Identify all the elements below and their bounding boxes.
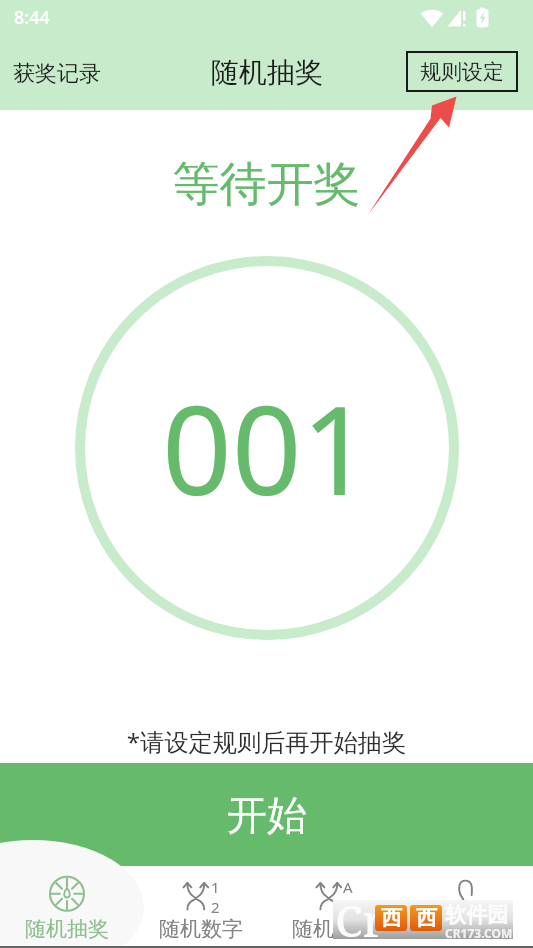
staticText: 随机抽奖 [25, 916, 109, 942]
staticText: 规则设定 [420, 59, 504, 85]
other: Wi-Fi [420, 7, 444, 28]
staticText: 西 [416, 905, 437, 931]
staticText: A [343, 877, 353, 897]
staticText: 随机抽奖 [211, 55, 323, 90]
staticText: 2 [211, 897, 220, 915]
staticText: 随机字母 [292, 916, 376, 942]
other: Battery charging [476, 7, 489, 28]
button[interactable]: A [267, 866, 400, 948]
staticText: 1 [211, 877, 220, 897]
staticText: B [343, 897, 353, 915]
button[interactable]: 1 [134, 866, 267, 948]
button[interactable]: 随机抽奖 [0, 866, 134, 948]
staticText: 开始 [227, 790, 307, 840]
button[interactable]: 随机焦点 [400, 866, 533, 948]
button[interactable]: 规则设定 [406, 51, 518, 92]
staticText: Cr [335, 890, 385, 947]
button[interactable]: 获奖记录 [0, 52, 109, 96]
staticText: 软件园 [445, 902, 508, 928]
staticText: 等待开奖 [0, 155, 533, 214]
staticText: 获奖记录 [13, 60, 101, 88]
button[interactable]: 开始 [0, 763, 533, 866]
staticText: CR173.COM [445, 925, 513, 941]
other: Mobile signal [447, 7, 467, 28]
staticText: 001 [162, 365, 372, 531]
staticText: 随机数字 [159, 916, 243, 942]
staticText: 西 [381, 905, 402, 931]
staticText: *请设定规则后再开始抽奖 [0, 725, 533, 758]
staticText: 随机焦点 [425, 916, 509, 942]
staticText: 8:44 [14, 5, 50, 30]
